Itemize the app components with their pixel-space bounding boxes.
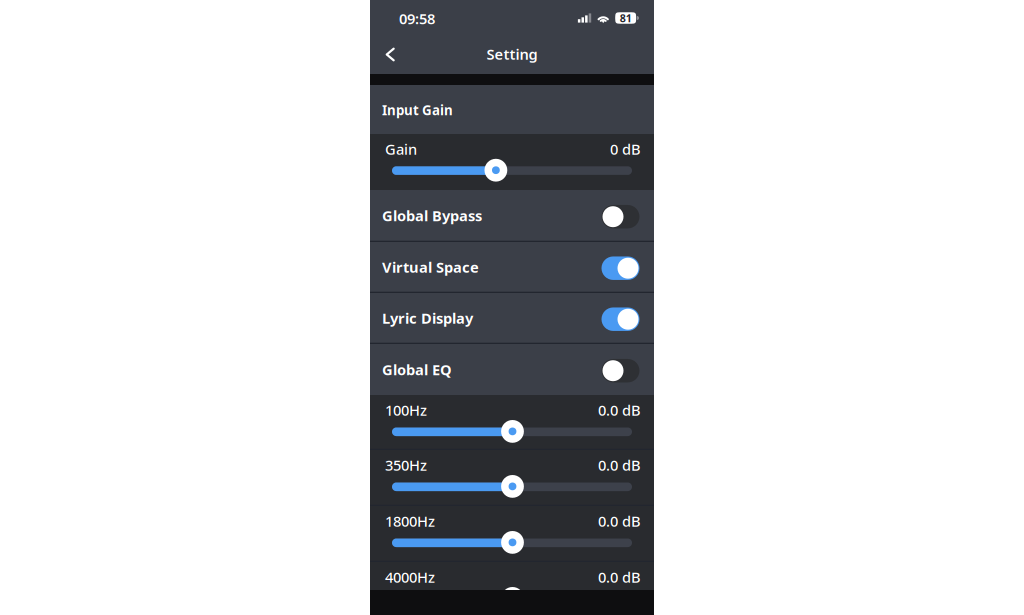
button[interactable]: 350Hz [370,450,654,505]
staticText: Lyric Display [382,308,473,328]
button[interactable]: Virtual Space [370,242,654,292]
button[interactable]: 100Hz [370,395,654,449]
staticText: Global EQ [382,360,452,379]
staticText: 0.0 dB [598,400,641,420]
staticText: Global Bypass [382,206,482,225]
staticText: 81 [620,11,632,25]
staticText: Gain [385,139,417,159]
staticText: 100Hz [385,400,427,420]
button[interactable]: Lyric Display [370,293,654,343]
staticText: 09:58 [399,9,435,28]
staticText: 1800Hz [385,511,435,531]
button[interactable]: Gain [370,134,654,190]
staticText: 0 dB [610,139,641,159]
staticText: Input Gain [382,101,453,119]
staticText: Setting [486,44,537,64]
staticText: 0.0 dB [598,455,641,475]
staticText: 4000Hz [385,567,435,587]
button[interactable]: Global Bypass [370,190,654,241]
button[interactable]: 4000Hz [370,562,654,615]
staticText: 0.0 dB [598,567,641,587]
staticText: Virtual Space [382,257,479,277]
button[interactable]: Back [370,34,410,74]
staticText: 0.0 dB [598,511,641,531]
button[interactable]: 1800Hz [370,506,654,561]
button[interactable]: Global EQ [370,344,654,395]
staticText: 350Hz [385,455,427,475]
